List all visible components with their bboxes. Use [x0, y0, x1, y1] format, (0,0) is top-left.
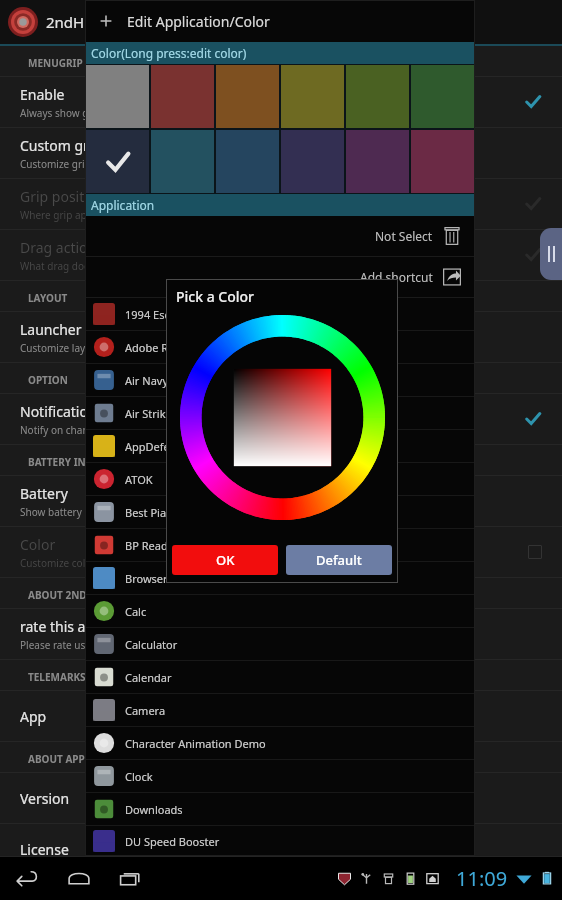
staticText: BP Reader: [125, 538, 179, 553]
button[interactable]: Battery: [0, 476, 562, 526]
button[interactable]: ATOK: [85, 463, 475, 495]
button[interactable]: Home: [66, 865, 92, 891]
staticText: Add shortcut: [360, 269, 433, 285]
staticText: Where grip appears: [20, 208, 113, 222]
button[interactable]: Grip handle: [540, 228, 562, 280]
button[interactable]: Back: [14, 865, 40, 891]
staticText: TELEMARKS: [28, 670, 86, 684]
staticText: Clock: [125, 769, 153, 784]
staticText: Camera: [125, 703, 166, 718]
other: Delete: [441, 225, 463, 247]
button[interactable]: Air Strike: [85, 397, 475, 429]
staticText: Customize grip image: [20, 157, 123, 171]
button[interactable]: App: [0, 691, 562, 741]
staticText: LAYOUT: [28, 291, 68, 305]
staticText: Default: [316, 551, 362, 569]
button[interactable]: Browser: [85, 562, 475, 594]
other: Add: [97, 12, 115, 30]
staticText: AppDefender: [125, 439, 195, 454]
button[interactable]: Launcher layout: [0, 312, 562, 362]
button[interactable]: Color: [0, 527, 562, 577]
staticText: Air Strike: [125, 406, 172, 421]
button[interactable]: OK: [172, 545, 278, 575]
staticText: BATTERY INFO: [28, 455, 100, 469]
button[interactable]: Calendar: [85, 661, 475, 693]
staticText: Adobe Reader: [125, 340, 199, 355]
button[interactable]: AppDefender: [85, 430, 475, 462]
staticText: Color(Long press:edit color): [91, 45, 247, 61]
button[interactable]: Add shortcut: [85, 257, 475, 297]
button[interactable]: rate this app: [0, 609, 562, 659]
staticText: Launcher layout: [20, 320, 126, 339]
staticText: Please rate us: [20, 638, 86, 652]
staticText: Calendar: [125, 670, 172, 685]
button[interactable]: 1994 Escape: [85, 298, 475, 330]
staticText: Drag action: [20, 238, 97, 257]
button[interactable]: Calc: [85, 595, 475, 627]
staticText: ABOUT 2NDHOME: [28, 588, 118, 602]
staticText: App: [20, 707, 47, 726]
button[interactable]: BP Reader: [85, 529, 475, 561]
staticText: Battery: [20, 484, 68, 503]
staticText: Edit Application/Color: [127, 12, 270, 31]
button[interactable]: Camera: [85, 694, 475, 726]
staticText: 2ndHOME: [46, 12, 118, 32]
button[interactable]: Adobe Reader: [85, 331, 475, 363]
staticText: Notification: [20, 402, 97, 421]
staticText: ATOK: [125, 472, 153, 487]
button[interactable]: Character Animation Demo: [85, 727, 475, 759]
staticText: Calculator: [125, 637, 178, 652]
button[interactable]: Version: [0, 773, 562, 823]
button[interactable]: Default: [286, 545, 392, 575]
staticText: 11:09: [456, 865, 508, 892]
staticText: Customize layout: [20, 341, 101, 355]
button[interactable]: Grip position: [0, 179, 562, 229]
staticText: ABOUT APP: [28, 752, 85, 766]
button[interactable]: Add: [85, 0, 475, 42]
button[interactable]: License: [0, 824, 562, 874]
staticText: What drag does: [20, 259, 95, 273]
button[interactable]: Drag action: [0, 230, 562, 280]
staticText: rate this app: [20, 617, 103, 636]
staticText: Grip position: [20, 187, 106, 206]
staticText: Always show grip: [20, 106, 102, 120]
button[interactable]: [86, 130, 149, 193]
staticText: Notify on change: [20, 423, 101, 437]
staticText: Pick a Color: [176, 287, 255, 306]
button[interactable]: Calculator: [85, 628, 475, 660]
button[interactable]: Air Navy Fighters: [85, 364, 475, 396]
staticText: Character Animation Demo: [125, 736, 266, 751]
staticText: 1994 Escape: [125, 307, 189, 322]
staticText: Application: [91, 197, 155, 213]
button[interactable]: Custom grip: [0, 128, 562, 178]
staticText: Custom grip: [20, 136, 102, 155]
button[interactable]: Not Select: [85, 216, 475, 256]
button[interactable]: Enable: [0, 77, 562, 127]
button[interactable]: Best Piano: [85, 496, 475, 528]
button[interactable]: DU Speed Booster: [85, 826, 475, 856]
button[interactable]: Downloads: [85, 793, 475, 825]
staticText: Best Piano: [125, 505, 180, 520]
staticText: Not Select: [375, 228, 433, 244]
staticText: Color: [20, 535, 56, 554]
staticText: Enable: [20, 85, 65, 104]
staticText: DU Speed Booster: [125, 834, 220, 849]
button[interactable]: Clock: [85, 760, 475, 792]
staticText: OPTION: [28, 373, 68, 387]
button[interactable]: Recent apps: [118, 865, 144, 891]
button[interactable]: Notification: [0, 394, 562, 444]
staticText: Show battery level: [20, 505, 106, 519]
staticText: Version: [20, 789, 70, 808]
staticText: Browser: [125, 571, 168, 586]
